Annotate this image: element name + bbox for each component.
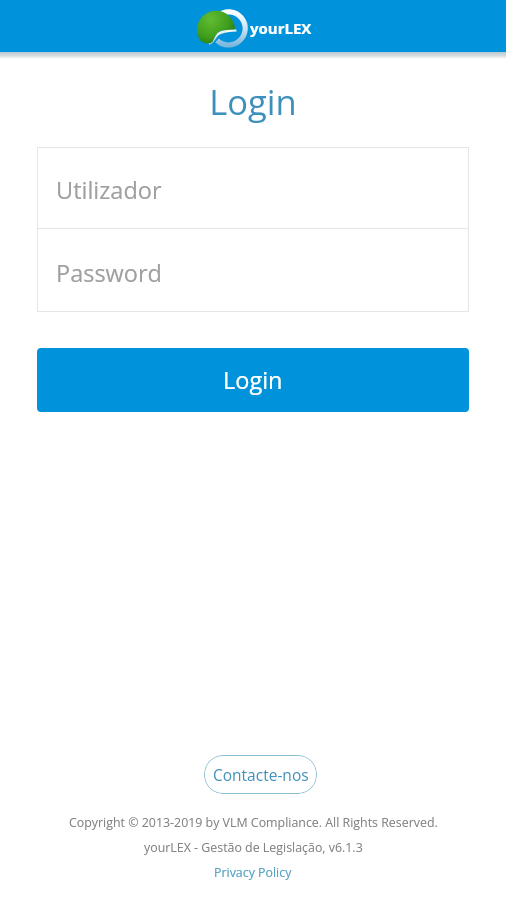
- button[interactable]: Login: [37, 348, 469, 412]
- staticText: Contacte-nos: [213, 764, 309, 785]
- staticText: yourLEX: [250, 18, 312, 38]
- staticText: Utilizador: [56, 174, 162, 206]
- staticText: Copyright © 2013-2019 by VLM Compliance.…: [69, 814, 438, 831]
- button[interactable]: Utilizador: [37, 147, 469, 228]
- staticText: Password: [56, 257, 162, 289]
- button[interactable]: Contacte-nos: [204, 755, 317, 794]
- staticText: yourLEX - Gestão de Legislação, v6.1.3: [144, 839, 363, 856]
- staticText: Login: [0, 78, 506, 125]
- other: yourLEX logo: [194, 8, 248, 46]
- button[interactable]: Privacy Policy: [214, 864, 292, 881]
- staticText: Login: [223, 364, 283, 396]
- button[interactable]: Password: [37, 229, 469, 312]
